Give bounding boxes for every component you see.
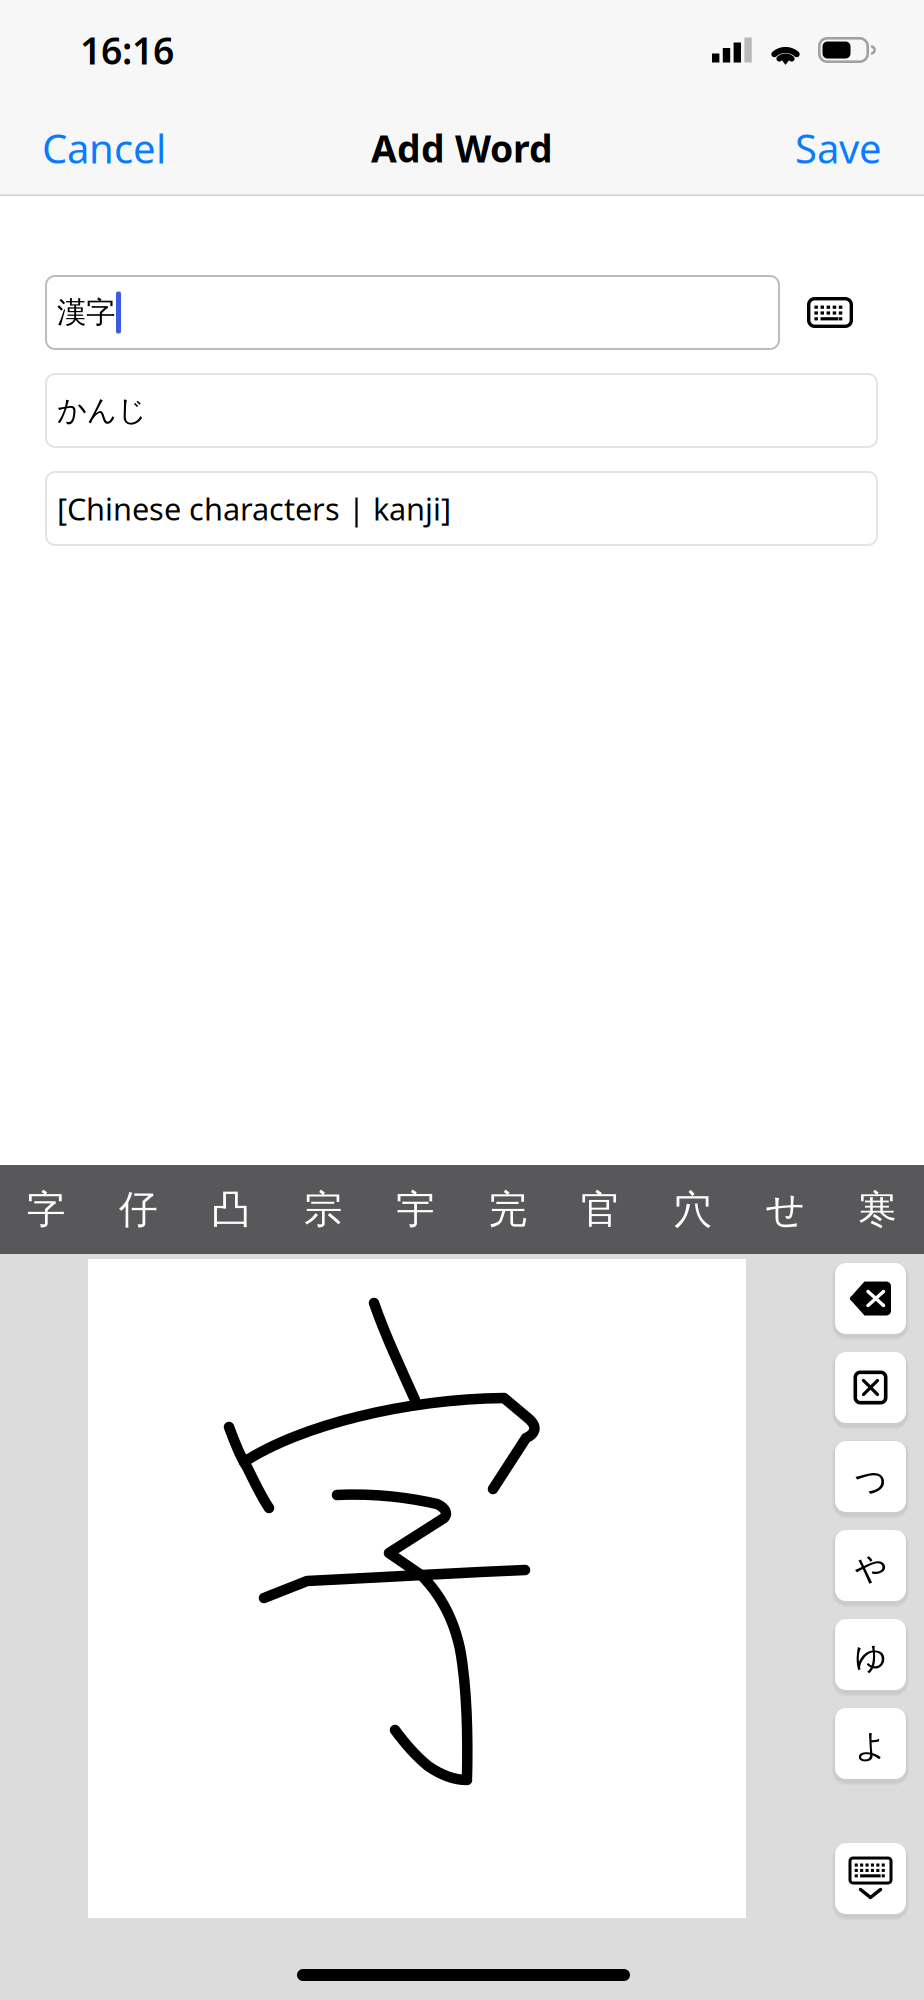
staticText: 官: [581, 1186, 620, 1233]
staticText: ゅ: [850, 1630, 891, 1679]
button[interactable]: Cancel: [34, 107, 174, 188]
button[interactable]: 字: [0, 1165, 92, 1254]
button[interactable]: Switch to keyboard: [781, 275, 879, 350]
staticText: かんじ: [57, 392, 147, 428]
button[interactable]: かんじ: [45, 373, 878, 448]
button[interactable]: Small ya: [832, 1527, 909, 1604]
staticText: ゃ: [850, 1541, 891, 1590]
button[interactable]: せ: [739, 1165, 832, 1254]
button[interactable]: Small yu: [832, 1616, 909, 1693]
button[interactable]: 宗: [277, 1165, 370, 1254]
button[interactable]: 仔: [92, 1165, 185, 1254]
button[interactable]: 官: [554, 1165, 647, 1254]
staticText: ょ: [850, 1719, 891, 1768]
staticText: 穴: [673, 1186, 712, 1233]
button[interactable]: Small yo: [832, 1705, 909, 1782]
button[interactable]: 漢字: [45, 275, 780, 350]
staticText: Save: [795, 121, 882, 174]
staticText: Cancel: [42, 121, 166, 174]
staticText: 漢字: [57, 294, 115, 330]
staticText: [Chinese characters | kanji]: [57, 488, 451, 529]
staticText: 16:16: [80, 25, 174, 75]
staticText: 字: [27, 1186, 66, 1233]
staticText: 宇: [396, 1186, 435, 1233]
button[interactable]: Hide keyboard: [832, 1840, 909, 1917]
staticText: っ: [850, 1452, 891, 1501]
button[interactable]: [Chinese characters | kanji]: [45, 471, 878, 546]
staticText: Add Word: [371, 123, 553, 173]
staticText: 宗: [304, 1186, 343, 1233]
button[interactable]: Handwriting canvas: [88, 1259, 746, 1918]
button[interactable]: Save: [787, 107, 890, 188]
button[interactable]: Small tsu: [832, 1438, 909, 1515]
staticText: 完: [489, 1186, 528, 1233]
button[interactable]: 穴: [647, 1165, 739, 1254]
button[interactable]: Delete: [832, 1260, 909, 1337]
staticText: 凸: [211, 1186, 250, 1233]
button[interactable]: 寒: [832, 1165, 924, 1254]
staticText: 仔: [119, 1186, 158, 1233]
button[interactable]: Clear all: [832, 1349, 909, 1426]
button[interactable]: 凸: [185, 1165, 277, 1254]
button[interactable]: 完: [462, 1165, 554, 1254]
staticText: 寒: [858, 1186, 897, 1233]
staticText: せ: [765, 1186, 805, 1233]
button[interactable]: 宇: [370, 1165, 462, 1254]
